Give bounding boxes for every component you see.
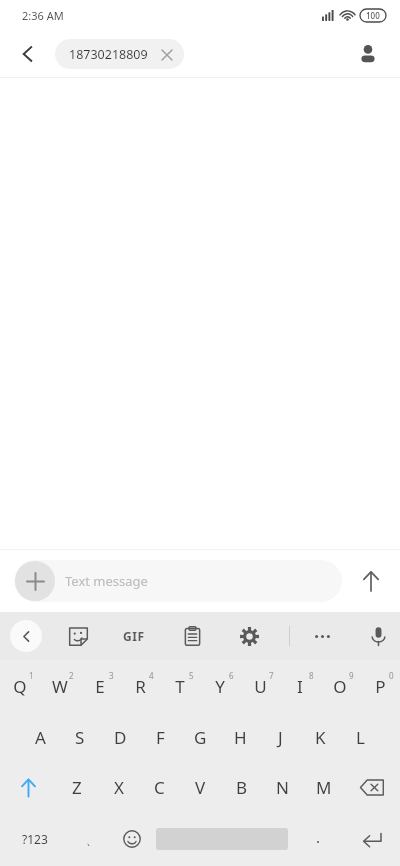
button[interactable]: W [40,660,80,712]
button[interactable]: F [140,712,180,762]
button[interactable]: GIF [112,614,156,658]
button[interactable]: Clipboard [170,614,214,658]
staticText: C [154,776,165,799]
staticText: 1 [29,670,34,681]
button[interactable]: R [120,660,160,712]
staticText: Y [215,675,225,698]
button[interactable]: K [300,712,340,762]
button[interactable]: M [303,762,344,812]
button[interactable]: Add attachment [14,560,342,602]
staticText: A [35,726,46,749]
staticText: I [297,675,303,698]
button[interactable]: Z [56,762,98,812]
staticText: Z [72,776,82,799]
button[interactable]: Shift [0,762,56,812]
staticText: E [95,675,105,698]
staticText: G [194,726,207,749]
staticText: 7 [269,670,274,681]
staticText: 6 [229,670,234,681]
staticText: H [234,726,247,749]
button[interactable]: Period [292,812,344,866]
button[interactable]: J [260,712,300,762]
button[interactable]: X [98,762,139,812]
button[interactable]: S [60,712,100,762]
button[interactable]: L [340,712,380,762]
button[interactable]: G [180,712,220,762]
button[interactable]: C [139,762,180,812]
button[interactable]: Y [200,660,240,712]
staticText: R [135,675,146,698]
staticText: N [276,776,289,799]
staticText: GIF [123,628,145,644]
button[interactable]: P [360,660,400,712]
button[interactable]: U [240,660,280,712]
button[interactable]: I [280,660,320,712]
staticText: 、 [86,834,97,848]
staticText: V [195,776,206,799]
button[interactable]: Contact details [348,34,388,74]
staticText: L [356,726,365,749]
button[interactable]: Collapse toolbar [10,620,42,652]
staticText: D [114,726,127,749]
staticText: B [236,776,248,799]
button[interactable]: A [20,712,60,762]
button[interactable]: V [180,762,221,812]
staticText: S [75,726,85,749]
button[interactable]: N [262,762,303,812]
staticText: P [375,675,386,698]
staticText: K [315,726,326,749]
staticText: 4 [149,670,154,681]
button[interactable]: Add attachment [15,561,55,601]
button[interactable]: D [100,712,140,762]
staticText: 2 [69,670,74,681]
staticText: J [278,726,283,749]
button[interactable]: Back [8,34,48,74]
staticText: 9 [349,670,354,681]
button[interactable]: O [320,660,360,712]
button[interactable]: More options [300,614,344,658]
button[interactable]: Q [0,660,40,712]
staticText: U [254,675,267,698]
button[interactable]: Stickers [56,614,100,658]
button[interactable]: Emoji [112,812,152,866]
staticText: Q [13,675,27,698]
staticText: 3 [109,670,114,681]
staticText: W [52,675,68,698]
button[interactable]: Send [348,558,394,604]
button[interactable]: ?123 [0,812,70,866]
staticText: X [114,776,124,799]
staticText: 18730218809 [69,46,148,63]
button[interactable]: 18730218809 [55,39,184,69]
staticText: 5 [189,670,194,681]
button[interactable]: T [160,660,200,712]
button[interactable]: Settings [227,614,271,658]
button[interactable]: B [221,762,262,812]
staticText: . [316,827,321,847]
staticText: 8 [309,670,314,681]
button[interactable]: E [80,660,120,712]
staticText: 2:36 AM [22,8,64,23]
staticText: O [333,675,347,698]
button[interactable]: Remove recipient [158,46,175,63]
staticText: ?123 [22,831,48,847]
staticText: M [316,776,332,799]
button[interactable]: H [220,712,260,762]
staticText: F [156,726,165,749]
staticText: 0 [389,670,394,681]
button[interactable]: Voice input [356,614,400,658]
staticText: 100 [366,10,380,21]
staticText: T [175,675,185,698]
button[interactable]: Enter [344,812,400,866]
button[interactable]: Backspace [344,762,400,812]
staticText: Text message [65,572,148,590]
